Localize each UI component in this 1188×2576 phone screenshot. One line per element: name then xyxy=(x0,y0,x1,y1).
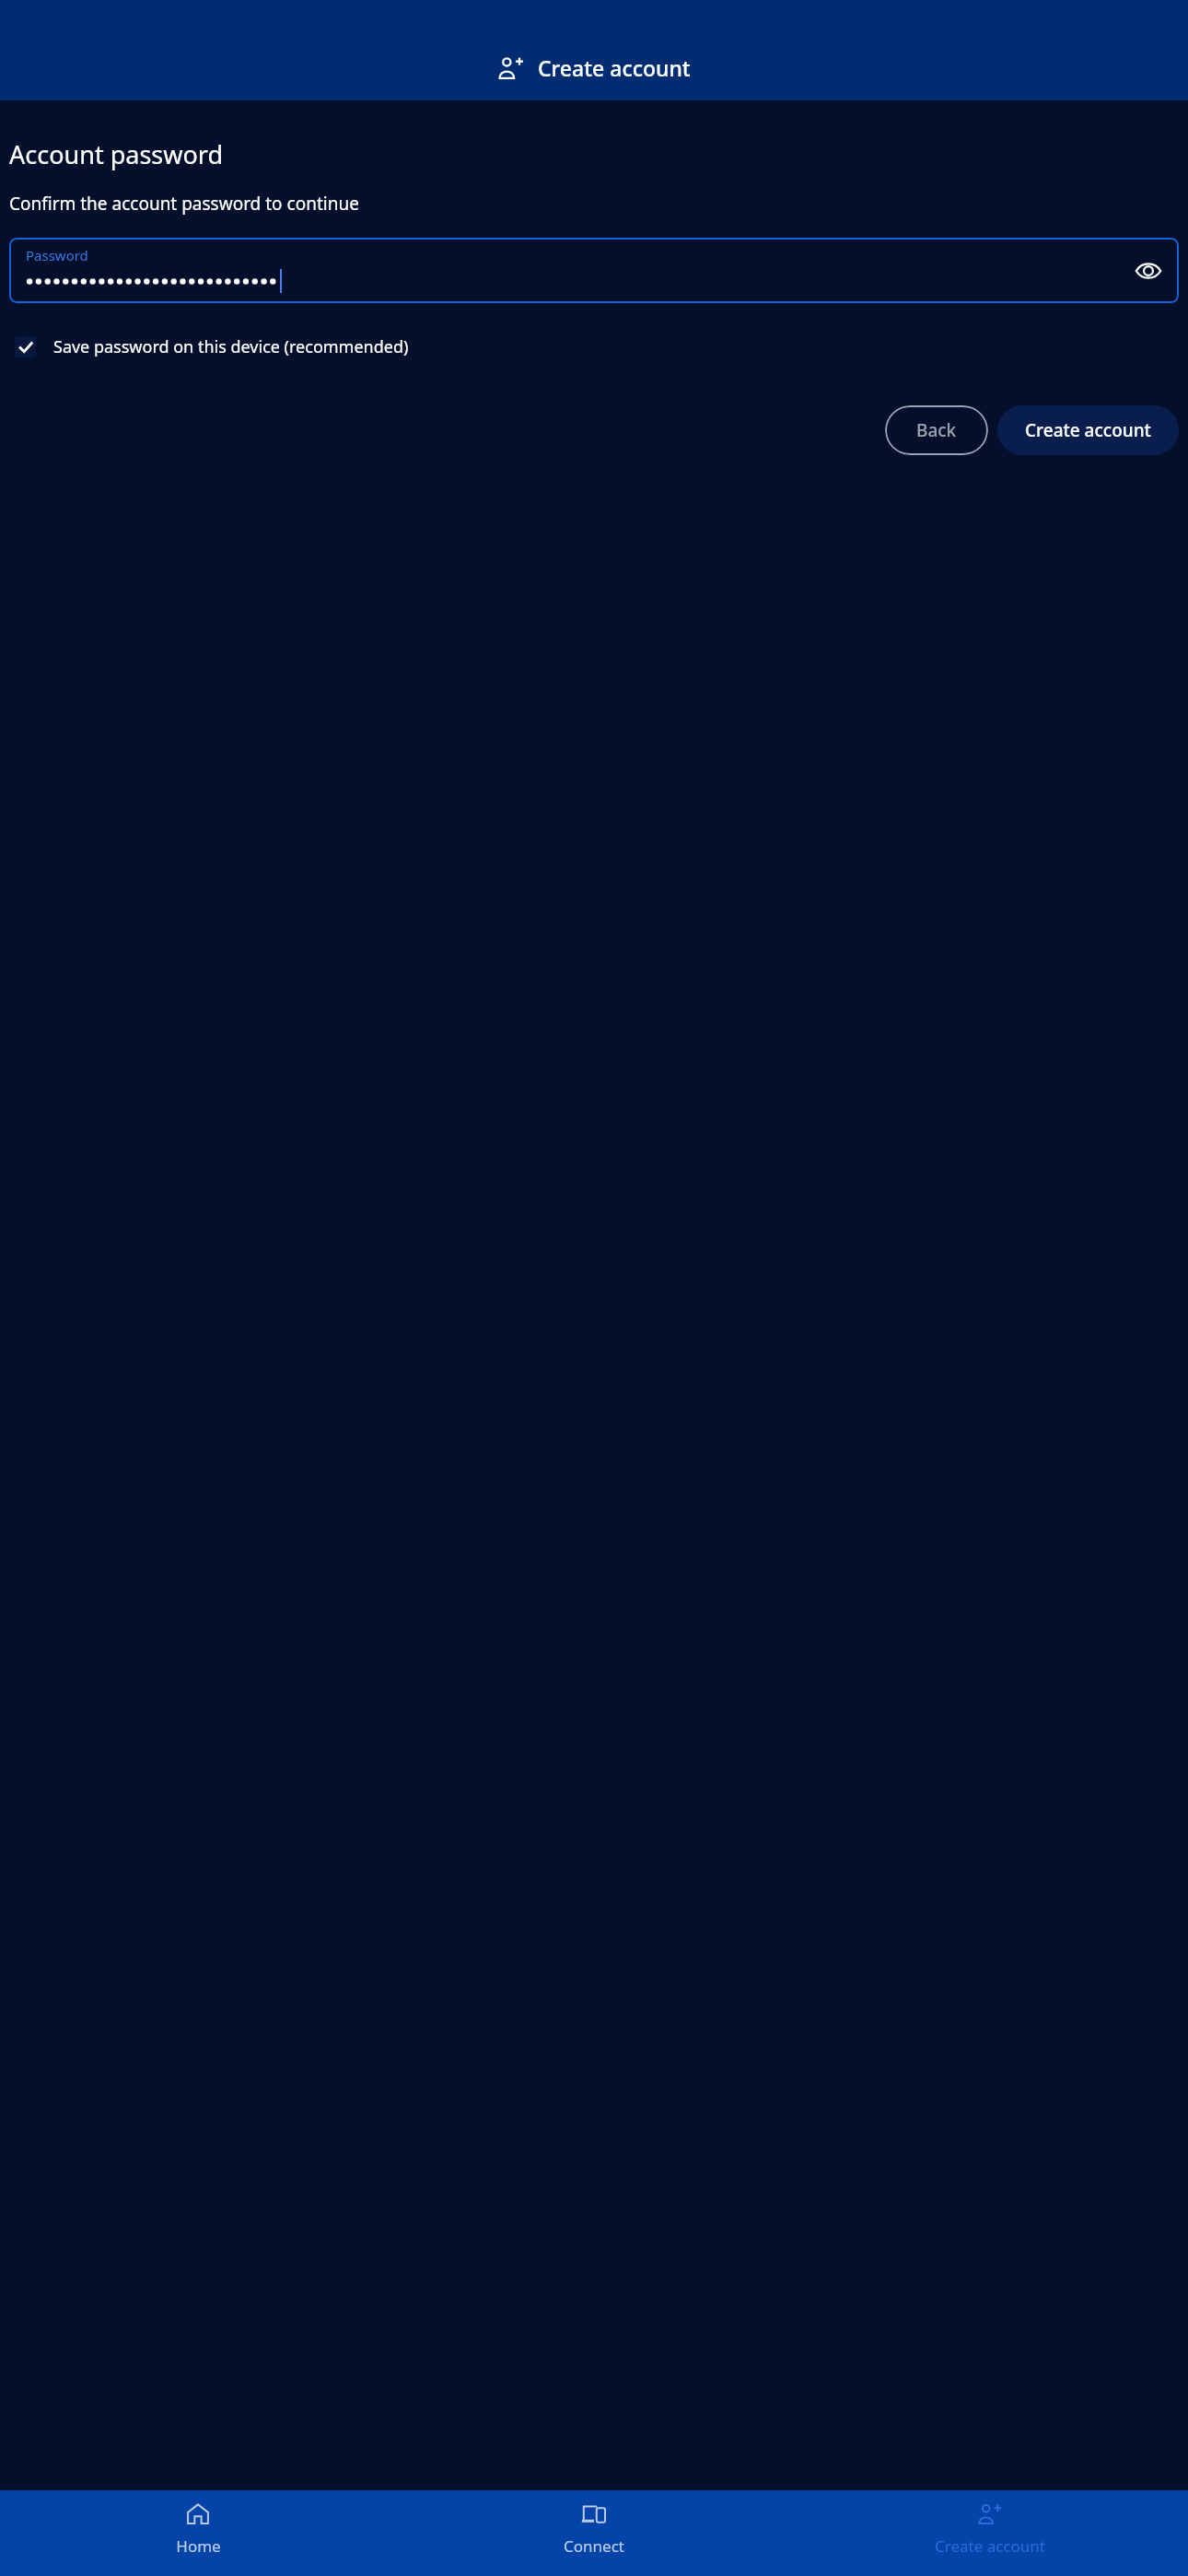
staticText: Password xyxy=(26,246,88,264)
staticText: Confirm the account password to continue xyxy=(9,192,359,216)
button[interactable]: Connect xyxy=(396,2490,792,2576)
button[interactable]: Home xyxy=(0,2490,396,2576)
staticText: Create account xyxy=(1025,418,1151,442)
staticText: Home xyxy=(176,2535,221,2557)
staticText: Create account xyxy=(935,2535,1045,2557)
staticText: Save password on this device (recommende… xyxy=(53,335,409,358)
button[interactable]: Save password on this device (recommende… xyxy=(9,330,414,364)
staticText: Back xyxy=(916,418,957,442)
button[interactable]: Create account xyxy=(997,405,1179,455)
staticText: Account password xyxy=(9,137,224,171)
button[interactable]: Password xyxy=(9,238,1179,303)
button[interactable]: Create account xyxy=(792,2490,1188,2576)
staticText: Create account xyxy=(538,53,691,82)
button[interactable]: Back xyxy=(885,405,988,455)
button[interactable]: Show password xyxy=(1127,250,1170,292)
staticText: Connect xyxy=(564,2535,624,2557)
